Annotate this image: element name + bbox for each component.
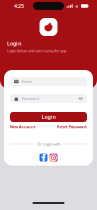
button[interactable]: New Account xyxy=(10,124,36,129)
staticText: Password xyxy=(22,96,39,101)
staticText: Login xyxy=(41,113,55,121)
staticText: 4:25 xyxy=(14,2,24,10)
staticText: Reset Password xyxy=(57,124,87,129)
button[interactable]: Log in with Facebook xyxy=(39,154,47,162)
button[interactable]: Reset Password xyxy=(57,124,87,129)
staticText: Email xyxy=(22,79,32,84)
staticText: Login xyxy=(7,40,21,47)
button[interactable]: Log in with Instagram xyxy=(49,154,57,162)
staticText: Login below and start using the app xyxy=(7,48,66,53)
staticText: Or Login with xyxy=(37,141,60,147)
staticText: New Account xyxy=(10,124,36,129)
button[interactable]: Login xyxy=(10,112,87,122)
button[interactable]: Show password xyxy=(78,97,83,100)
